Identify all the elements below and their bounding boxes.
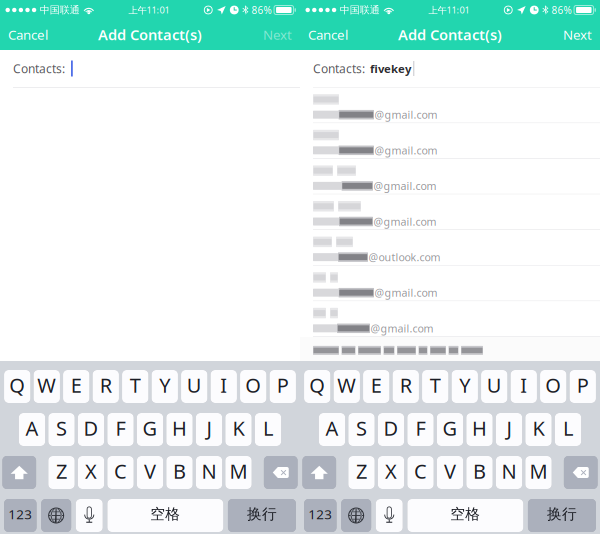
button[interactable]: B <box>466 456 493 489</box>
button[interactable]: 空格 <box>107 499 223 532</box>
button[interactable]: 空格 <box>407 499 523 532</box>
button[interactable]: 123 <box>4 499 37 532</box>
button[interactable]: Delete <box>564 456 598 489</box>
button[interactable]: I <box>211 370 237 403</box>
staticText: O <box>545 371 561 399</box>
button[interactable]: M <box>525 456 552 489</box>
button[interactable]: 换行 <box>228 499 296 532</box>
button[interactable]: Z <box>348 456 375 489</box>
staticText: Cancel <box>8 25 48 44</box>
button[interactable]: E <box>363 370 389 403</box>
button[interactable]: F <box>107 413 134 446</box>
staticText: Cancel <box>308 25 348 44</box>
button[interactable]: J <box>496 413 522 446</box>
button[interactable]: G <box>137 413 163 446</box>
button[interactable]: X <box>78 456 104 489</box>
staticText: 上午11:01 <box>128 4 169 16</box>
staticText: 换行 <box>547 505 577 523</box>
button[interactable]: B <box>166 456 193 489</box>
button[interactable]: Next <box>555 20 600 48</box>
button[interactable]: Y <box>152 370 178 403</box>
button[interactable]: X <box>378 456 404 489</box>
staticText: U <box>187 371 202 399</box>
button[interactable]: U <box>481 370 507 403</box>
button[interactable]: M <box>225 456 252 489</box>
staticText: F <box>115 414 125 442</box>
staticText: S <box>56 414 67 442</box>
button[interactable]: Cancel <box>0 20 56 48</box>
staticText: X <box>385 457 397 485</box>
button[interactable]: N <box>496 456 522 489</box>
button[interactable]: Q <box>4 370 30 403</box>
button[interactable] <box>300 337 600 364</box>
button[interactable]: @gmail.com <box>300 301 600 336</box>
button[interactable]: C <box>107 456 134 489</box>
button[interactable]: J <box>196 413 222 446</box>
button[interactable]: U <box>181 370 207 403</box>
button[interactable]: 123 <box>304 499 336 532</box>
button[interactable]: 换行 <box>528 499 596 532</box>
button[interactable]: G <box>437 413 463 446</box>
button[interactable]: R <box>93 370 119 403</box>
button[interactable]: O <box>240 370 266 403</box>
button[interactable]: @gmail.com <box>300 194 600 229</box>
button[interactable]: Q <box>304 370 330 403</box>
button[interactable]: @gmail.com <box>300 266 600 301</box>
button[interactable]: Dictate <box>76 499 103 532</box>
button[interactable]: N <box>196 456 222 489</box>
button[interactable]: Next keyboard <box>341 499 371 532</box>
button[interactable]: P <box>569 370 596 403</box>
button[interactable]: V <box>437 456 463 489</box>
staticText: Add Contact(s) <box>98 24 202 44</box>
button[interactable]: W <box>334 370 360 403</box>
button[interactable]: V <box>137 456 163 489</box>
button[interactable]: Y <box>452 370 478 403</box>
staticText: @gmail.com <box>373 179 436 193</box>
button[interactable]: W <box>34 370 60 403</box>
button[interactable]: H <box>166 413 193 446</box>
button[interactable]: I <box>511 370 537 403</box>
button[interactable]: K <box>225 413 252 446</box>
button[interactable]: Z <box>48 456 75 489</box>
button[interactable]: L <box>555 413 581 446</box>
button[interactable]: D <box>78 413 104 446</box>
button[interactable]: T <box>422 370 448 403</box>
button[interactable]: @gmail.com <box>300 88 600 123</box>
button[interactable]: S <box>48 413 75 446</box>
button[interactable]: A <box>319 413 345 446</box>
button[interactable]: T <box>122 370 148 403</box>
button[interactable]: D <box>378 413 404 446</box>
button[interactable]: Dictate <box>376 499 403 532</box>
staticText: P <box>577 371 589 399</box>
button[interactable]: @gmail.com <box>300 159 600 194</box>
button[interactable]: P <box>270 370 296 403</box>
staticText: Next <box>263 25 292 44</box>
button[interactable]: Shift <box>302 456 336 489</box>
staticText: T <box>130 371 141 399</box>
staticText: A <box>25 414 38 442</box>
staticText: Z <box>356 457 367 485</box>
button[interactable]: @gmail.com <box>300 123 600 158</box>
staticText: H <box>472 414 487 442</box>
staticText: 空格 <box>450 505 480 523</box>
button[interactable]: A <box>19 413 45 446</box>
button[interactable]: Shift <box>2 456 36 489</box>
button[interactable]: Next keyboard <box>41 499 71 532</box>
button[interactable]: R <box>393 370 419 403</box>
staticText: 123 <box>308 505 332 523</box>
button[interactable]: L <box>255 413 281 446</box>
button[interactable]: O <box>540 370 566 403</box>
button[interactable]: H <box>466 413 493 446</box>
button[interactable]: F <box>407 413 434 446</box>
button[interactable]: Cancel <box>300 20 356 48</box>
button[interactable]: C <box>407 456 434 489</box>
button[interactable]: S <box>348 413 375 446</box>
button[interactable]: Next <box>255 20 300 48</box>
staticText: R <box>100 371 112 399</box>
button[interactable]: K <box>525 413 552 446</box>
staticText: 86% <box>251 3 271 17</box>
button[interactable]: Delete <box>264 456 298 489</box>
staticText: V <box>144 457 156 485</box>
button[interactable]: @outlook.com <box>300 230 600 265</box>
button[interactable]: E <box>63 370 89 403</box>
